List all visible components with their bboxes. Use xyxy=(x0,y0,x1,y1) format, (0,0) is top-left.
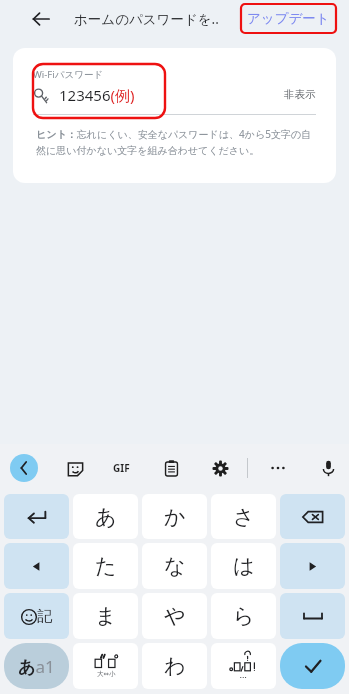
button[interactable]: な xyxy=(142,543,207,589)
button[interactable]: た xyxy=(73,543,138,589)
button[interactable]: アップデート xyxy=(243,6,334,31)
button[interactable]: Clipboard xyxy=(158,455,184,481)
staticText: あa1 xyxy=(18,655,55,678)
staticText: さ xyxy=(233,504,255,530)
button[interactable]: あ xyxy=(73,494,138,539)
button[interactable]: Return xyxy=(4,494,69,539)
button[interactable]: Settings xyxy=(207,455,233,481)
staticText: 記 xyxy=(37,607,52,626)
button[interactable]: Voice input xyxy=(315,455,341,481)
other: Password xyxy=(33,87,50,104)
button[interactable]: わ xyxy=(142,643,207,689)
staticText: や xyxy=(164,603,186,629)
staticText: な xyxy=(164,553,186,579)
button[interactable]: さ xyxy=(211,494,276,539)
staticText: ヒント：忘れにくい、安全なパスワードは、4から5文字の自然に思い付かない文字を組… xyxy=(36,127,313,157)
button[interactable]: Backspace xyxy=(280,494,345,539)
button[interactable]: Cursor right xyxy=(280,543,345,589)
staticText: Wi-Fiパスワード xyxy=(33,68,104,81)
button[interactable] xyxy=(211,643,276,689)
button[interactable]: Stickers xyxy=(62,455,88,481)
button[interactable]: Collapse toolbar xyxy=(10,454,38,482)
staticText: 大⇔小 xyxy=(97,670,116,678)
button[interactable]: Input mode xyxy=(4,643,69,689)
staticText: た xyxy=(95,553,117,579)
button[interactable]: More options xyxy=(265,455,291,481)
staticText: 123456(例) xyxy=(59,85,135,105)
button[interactable]: Back xyxy=(28,6,54,32)
staticText: わ xyxy=(164,653,186,679)
staticText: ら xyxy=(233,603,255,629)
staticText: ホームのパスワードを.. xyxy=(74,10,219,28)
button[interactable]: Cursor left xyxy=(4,543,69,589)
button[interactable]: Space xyxy=(280,593,345,639)
staticText: か xyxy=(164,504,186,530)
staticText: あ xyxy=(95,504,117,530)
button[interactable]: Enter xyxy=(280,643,345,689)
button[interactable]: ら xyxy=(211,593,276,639)
staticText: ま xyxy=(95,603,117,629)
staticText: アップデート xyxy=(247,10,330,27)
button[interactable]: GIF xyxy=(108,455,134,481)
button[interactable]: Emoji and symbols xyxy=(4,593,69,639)
button[interactable]: ま xyxy=(73,593,138,639)
staticText: は xyxy=(233,553,255,579)
button[interactable]: は xyxy=(211,543,276,589)
button[interactable]: 大⇔小 xyxy=(73,643,138,689)
button[interactable]: 非表示 xyxy=(284,88,316,101)
staticText: GIF xyxy=(113,461,130,475)
button[interactable]: や xyxy=(142,593,207,639)
button[interactable]: か xyxy=(142,494,207,539)
